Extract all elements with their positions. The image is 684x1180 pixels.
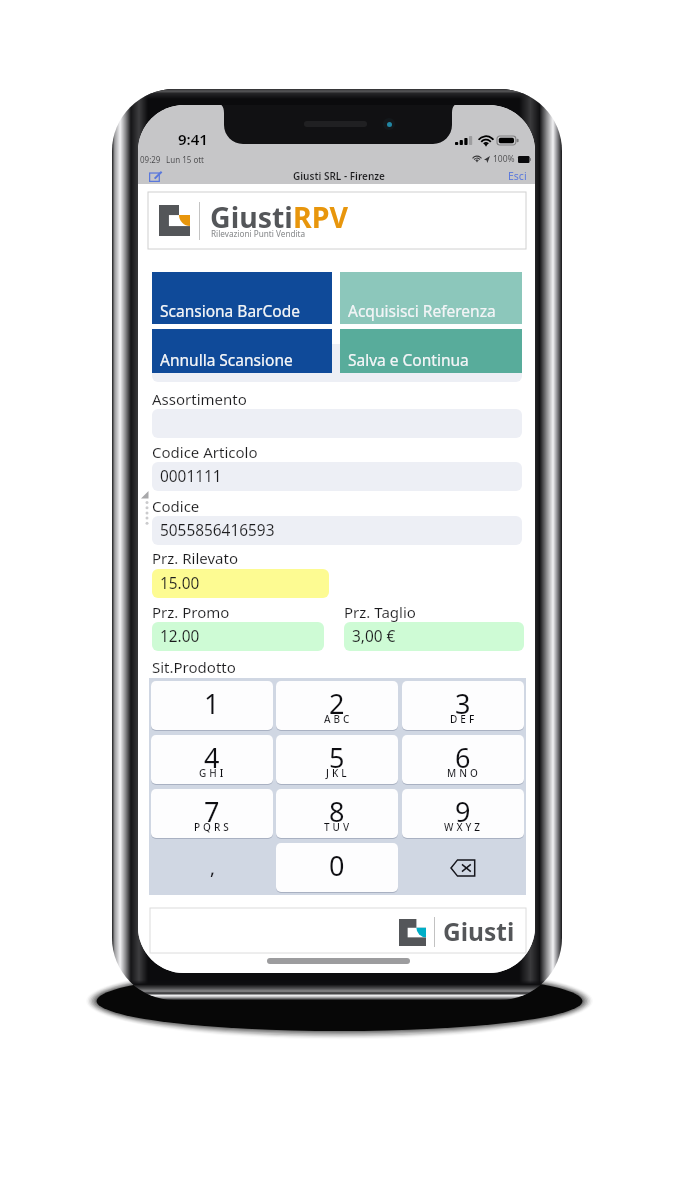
staticText: 0 — [329, 847, 345, 884]
button[interactable]: 9 — [402, 789, 524, 838]
staticText: 8 — [329, 793, 345, 830]
staticText: 9 — [455, 793, 471, 830]
staticText: 3 — [455, 685, 471, 722]
staticText: GHI — [199, 766, 227, 780]
button[interactable]: 15.00 — [152, 569, 329, 598]
staticText: Scansiona BarCode — [160, 300, 300, 321]
staticText: ABC — [324, 712, 353, 726]
staticText: 6 — [455, 739, 471, 776]
button[interactable]: Backspace — [400, 841, 526, 895]
staticText: DEF — [450, 712, 478, 726]
button[interactable]: 6 — [402, 735, 524, 784]
staticText: 0001111 — [160, 466, 222, 487]
staticText: Rilevazioni Punti Vendita — [211, 228, 306, 239]
staticText: 7 — [204, 793, 220, 830]
button[interactable]: Compose — [145, 167, 165, 184]
button[interactable]: Esci — [508, 167, 527, 184]
staticText: Codice Articolo — [152, 442, 258, 462]
button[interactable]: Annulla Scansione — [152, 329, 332, 373]
staticText: 5 — [329, 739, 345, 776]
button[interactable]: 5 — [276, 735, 398, 784]
staticText: PQRS — [194, 820, 232, 834]
staticText: RPV — [293, 198, 348, 237]
staticText: 4 — [204, 739, 220, 776]
staticText: 1 — [204, 685, 220, 722]
staticText: 09:29 — [140, 154, 161, 165]
button[interactable]: 12.00 — [152, 622, 324, 651]
button[interactable]: 3 — [402, 681, 524, 730]
staticText: Acquisisci Referenza — [348, 300, 496, 321]
staticText: Sit.Prodotto — [152, 657, 236, 677]
staticText: Lun 15 ott — [166, 154, 205, 165]
staticText: MNO — [447, 766, 481, 780]
button[interactable]: 8 — [276, 789, 398, 838]
staticText: 9:41 — [178, 129, 208, 149]
staticText: 100% — [493, 153, 515, 165]
staticText: 2 — [329, 685, 345, 722]
staticText: Annulla Scansione — [160, 349, 293, 370]
staticText: Giusti SRL - Firenze — [293, 169, 385, 183]
staticText: Prz. Rilevato — [152, 548, 238, 568]
staticText: Salva e Continua — [348, 349, 469, 370]
staticText: 15.00 — [160, 573, 200, 594]
staticText: 3,00 € — [352, 626, 396, 647]
button[interactable]: Scansiona BarCode — [152, 272, 332, 324]
staticText: Giusti — [210, 198, 293, 237]
button[interactable]: 4 — [151, 735, 273, 784]
staticText: Codice — [152, 496, 200, 516]
button[interactable]: Salva e Continua — [340, 329, 522, 373]
button[interactable]: 7 — [151, 789, 273, 838]
staticText: Prz. Promo — [152, 602, 230, 622]
staticText: WXYZ — [444, 820, 484, 834]
staticText: 5055856416593 — [160, 520, 275, 541]
button[interactable]: 1 — [151, 681, 273, 730]
button[interactable]: Acquisisci Referenza — [340, 272, 522, 324]
button[interactable]: 2 — [276, 681, 398, 730]
button[interactable]: 3,00 € — [344, 622, 524, 651]
button[interactable]: , — [149, 841, 275, 895]
staticText: , — [210, 856, 215, 881]
staticText: Esci — [508, 169, 527, 183]
button[interactable]: 0 — [276, 843, 398, 892]
button[interactable]: 5055856416593 — [152, 516, 522, 545]
staticText: TUV — [324, 820, 353, 834]
staticText: Assortimento — [152, 389, 247, 409]
staticText: JKL — [326, 766, 350, 780]
staticText: 12.00 — [160, 626, 200, 647]
button[interactable]: 0001111 — [152, 462, 522, 491]
staticText: Prz. Taglio — [344, 602, 416, 622]
staticText: Giusti — [443, 915, 515, 948]
